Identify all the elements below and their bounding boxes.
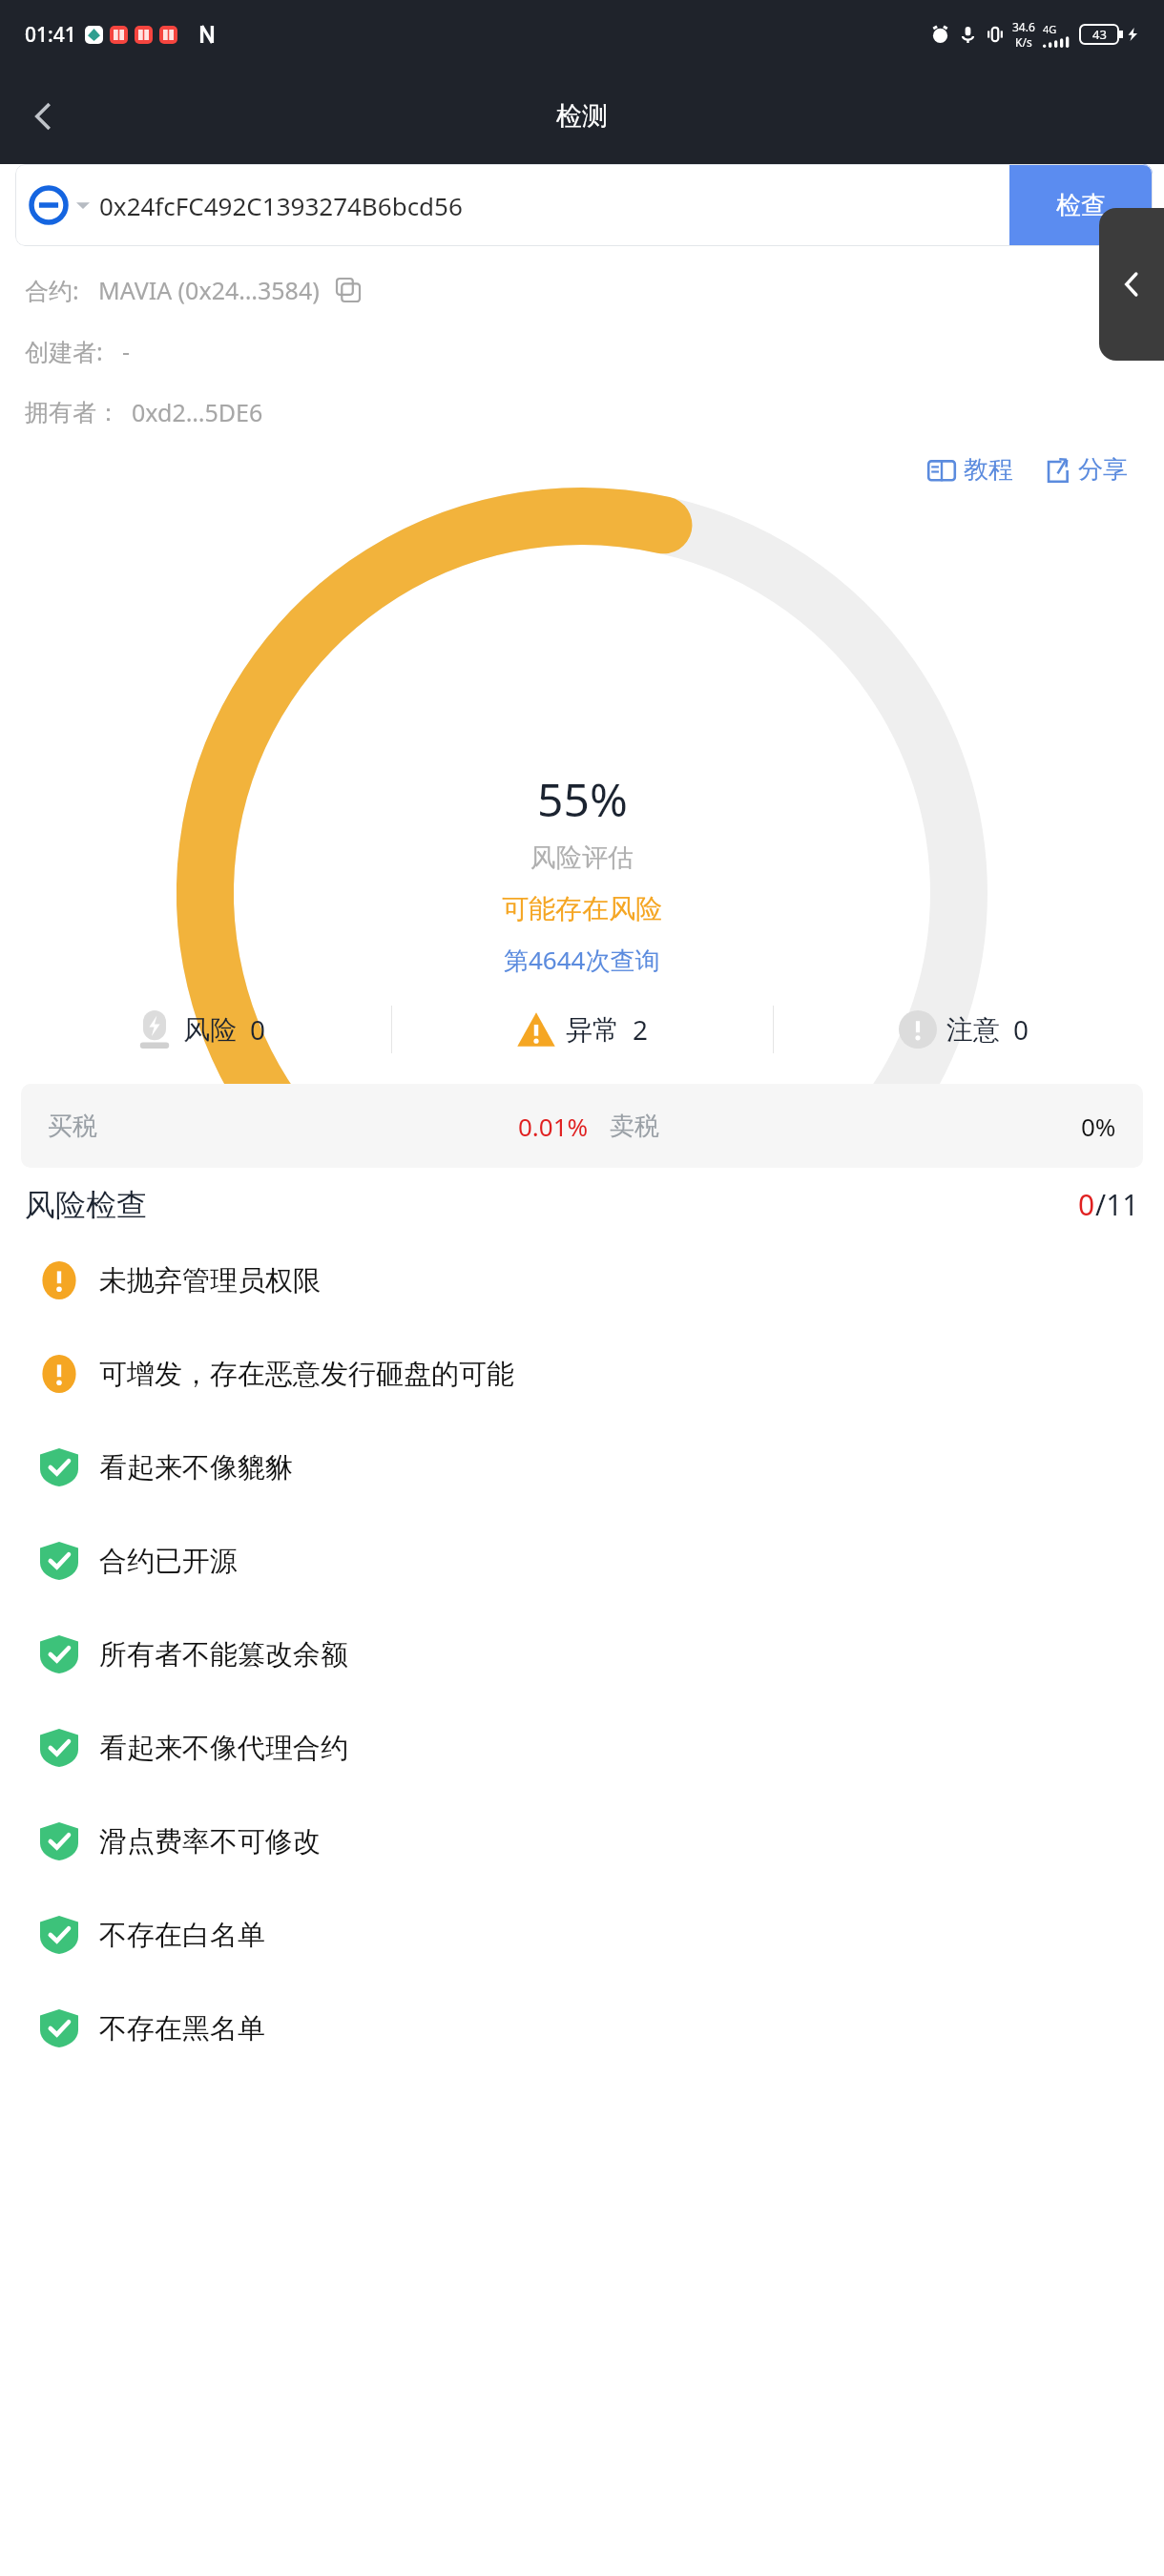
staticText: 01:41 — [25, 21, 76, 49]
staticText: 34.6 — [1012, 19, 1035, 34]
button[interactable]: Back — [13, 86, 74, 147]
staticText: 未抛弃管理员权限 — [99, 1263, 321, 1298]
button[interactable]: 注意 — [774, 987, 1154, 1072]
staticText: /11 — [1095, 1185, 1139, 1224]
staticText: 检测 — [556, 100, 608, 133]
staticText: 风险评估 — [530, 841, 634, 874]
staticText: K/s — [1015, 34, 1032, 50]
button[interactable]: 未抛弃管理员权限 — [0, 1234, 1164, 1327]
button[interactable]: 可增发，存在恶意发行砸盘的可能 — [0, 1327, 1164, 1421]
staticText: 卖税 — [610, 1111, 659, 1142]
button[interactable]: 分享 — [1038, 448, 1133, 491]
button[interactable] — [15, 185, 95, 225]
button[interactable]: 滑点费率不可修改 — [0, 1795, 1164, 1888]
staticText: 分享 — [1078, 454, 1128, 486]
staticText: 教程 — [964, 454, 1013, 486]
staticText: 0.01% — [518, 1110, 589, 1143]
staticText: 创建者: — [25, 335, 103, 367]
staticText: 0 — [250, 1011, 266, 1048]
staticText: 55% — [537, 768, 628, 830]
staticText: 0 — [1013, 1011, 1029, 1048]
button[interactable]: 不存在白名单 — [0, 1888, 1164, 1982]
staticText: 所有者不能篡改余额 — [99, 1637, 348, 1672]
button[interactable]: 合约已开源 — [0, 1514, 1164, 1608]
staticText: 0 — [1078, 1185, 1095, 1224]
staticText: 注意 — [946, 1013, 1000, 1047]
staticText: 合约已开源 — [99, 1544, 238, 1579]
button[interactable]: 风险 — [10, 987, 391, 1072]
staticText: MAVIA (0x24…3584) — [98, 274, 320, 306]
staticText: 0xd2…5DE6 — [132, 396, 263, 428]
button[interactable]: 教程 — [922, 448, 1019, 491]
staticText: 合约: — [25, 274, 79, 306]
staticText: 4G — [1043, 22, 1057, 36]
button[interactable]: 检查 — [1009, 164, 1153, 246]
button[interactable]: Expand panel — [1099, 208, 1164, 361]
staticText: 不存在黑名单 — [99, 2011, 265, 2046]
staticText: 可能存在风险 — [502, 892, 662, 925]
button[interactable]: 看起来不像貔貅 — [0, 1421, 1164, 1514]
staticText: 可增发，存在恶意发行砸盘的可能 — [99, 1357, 514, 1392]
button[interactable]: 所有者不能篡改余额 — [0, 1608, 1164, 1701]
button[interactable]: Copy — [331, 273, 365, 307]
staticText: 看起来不像代理合约 — [99, 1731, 348, 1766]
staticText: 0% — [1081, 1110, 1116, 1143]
button[interactable]: 看起来不像代理合约 — [0, 1701, 1164, 1795]
staticText: - — [122, 335, 131, 367]
staticText: 滑点费率不可修改 — [99, 1824, 321, 1859]
staticText: 检查 — [1056, 190, 1106, 221]
staticText: 43 — [1092, 26, 1107, 43]
staticText: 风险检查 — [25, 1186, 147, 1224]
staticText: 买税 — [48, 1111, 97, 1142]
staticText: 拥有者： — [25, 398, 120, 427]
button[interactable]: 异常 — [392, 987, 773, 1072]
staticText: 看起来不像貔貅 — [99, 1450, 293, 1485]
staticText: 0x24fcFC492C1393274B6bcd56 — [99, 189, 1009, 222]
staticText: 异常 — [566, 1013, 619, 1047]
button[interactable]: 第4644次查询 — [504, 943, 660, 977]
button[interactable]: 不存在黑名单 — [0, 1982, 1164, 2075]
staticText: 不存在白名单 — [99, 1918, 265, 1953]
staticText: 风险 — [183, 1013, 237, 1047]
staticText: 2 — [633, 1011, 649, 1048]
